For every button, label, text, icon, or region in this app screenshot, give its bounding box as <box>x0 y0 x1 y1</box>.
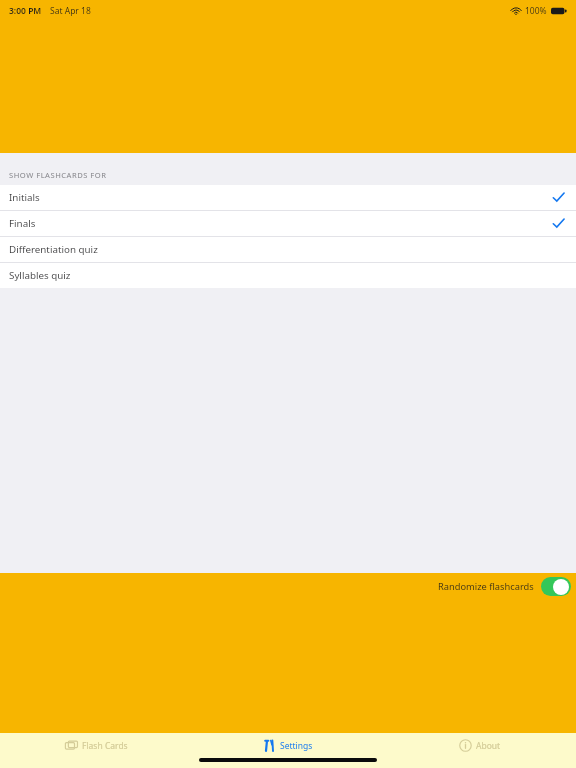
staticText: Sat Apr 18 <box>50 5 91 17</box>
staticText: Syllables quiz <box>9 269 71 282</box>
button[interactable]: Settings <box>192 733 384 758</box>
button[interactable]: Syllables quiz <box>0 263 576 288</box>
staticText: Initials <box>9 191 40 204</box>
button[interactable]: Differentiation quiz <box>0 237 576 262</box>
staticText: Settings <box>280 740 313 752</box>
staticText: Randomize flashcards <box>438 580 534 593</box>
staticText: 3:00 PM <box>9 5 42 17</box>
button[interactable]: Randomize flashcards <box>438 577 571 596</box>
other: Randomize flashcards toggle, on <box>541 577 571 596</box>
staticText: 100% <box>525 5 547 17</box>
button[interactable]: Finals <box>0 211 576 236</box>
button[interactable]: Flash Cards <box>0 733 192 758</box>
button[interactable]: About <box>384 733 576 758</box>
button[interactable]: Initials <box>0 185 576 210</box>
staticText: Differentiation quiz <box>9 243 98 256</box>
staticText: SHOW FLASHCARDS FOR <box>9 170 107 180</box>
staticText: Flash Cards <box>82 740 128 752</box>
staticText: Finals <box>9 217 36 230</box>
staticText: About <box>476 740 501 752</box>
